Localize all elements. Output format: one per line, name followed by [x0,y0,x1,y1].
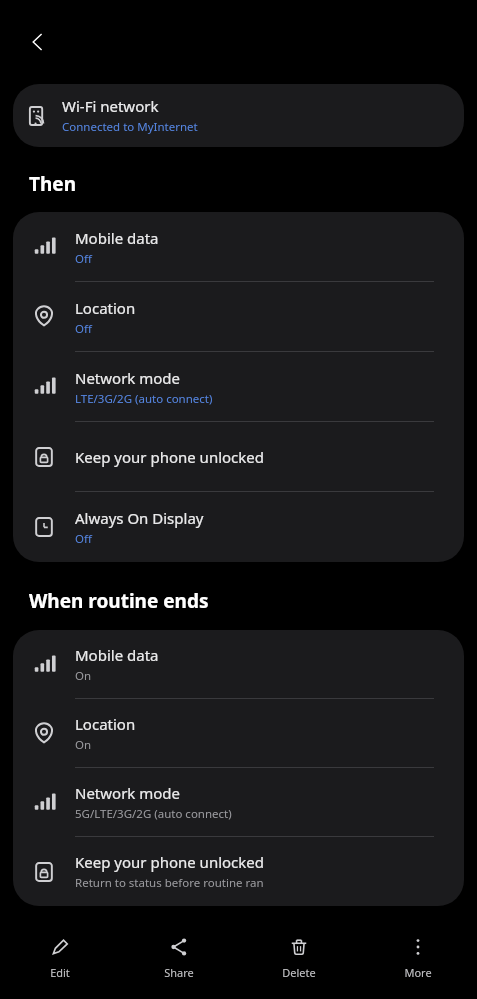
staticText: More [404,965,432,980]
button[interactable]: Location [13,699,464,768]
staticText: Location [75,298,136,318]
staticText: On [75,737,92,753]
staticText: Off [75,251,92,267]
button[interactable]: Mobile data [13,630,464,699]
staticText: Mobile data [75,228,159,248]
staticText: Connected to MyInternet [62,119,198,135]
staticText: Network mode [75,368,181,388]
staticText: Share [164,965,194,980]
button[interactable]: Mobile data [13,212,464,282]
staticText: When routine ends [29,588,209,614]
staticText: Wi-Fi network [62,96,159,116]
button[interactable]: More [358,925,477,980]
button[interactable]: Network mode [13,352,464,422]
staticText: Keep your phone unlocked [75,447,265,467]
staticText: Keep your phone unlocked [75,852,265,872]
staticText: Return to status before routine ran [75,875,264,891]
button[interactable]: Delete [239,925,358,980]
button[interactable]: Keep your phone unlocked [13,422,464,492]
staticText: Then [29,171,77,197]
staticText: Off [75,321,92,337]
button[interactable]: Network mode [13,768,464,837]
staticText: Mobile data [75,645,159,665]
button[interactable]: Share [119,925,238,980]
staticText: 5G/LTE/3G/2G (auto connect) [75,806,232,822]
staticText: LTE/3G/2G (auto connect) [75,391,213,407]
button[interactable]: Location [13,282,464,352]
staticText: Off [75,531,92,547]
staticText: Always On Display [75,508,204,528]
staticText: Location [75,714,136,734]
staticText: Edit [50,965,70,980]
button[interactable]: Wi-Fi network [13,84,464,147]
staticText: Delete [282,965,316,980]
staticText: Network mode [75,783,181,803]
staticText: On [75,668,92,684]
button[interactable]: Keep your phone unlocked [13,837,464,906]
button[interactable]: Back [16,20,60,64]
button[interactable]: Edit [0,925,119,980]
button[interactable]: Always On Display [13,492,464,562]
